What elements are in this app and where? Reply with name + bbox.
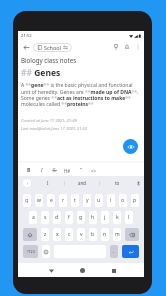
staticText: u [97,197,101,204]
button[interactable]: x [53,228,61,241]
button[interactable]: Home [76,264,89,277]
button[interactable]: h [89,211,97,224]
button[interactable]: S [48,165,61,176]
staticText: n [103,231,107,238]
button[interactable]: d [53,211,61,224]
button[interactable]: More suggestions [23,179,31,187]
button[interactable]: Pin [110,40,121,54]
staticText: a [32,214,35,221]
staticText: School [44,44,61,51]
staticText: and [78,180,86,186]
button[interactable]: g [77,211,85,224]
staticText: m [115,231,120,238]
button[interactable]: Back [20,41,32,53]
button[interactable]: ” [74,165,87,176]
button[interactable]: l [125,211,133,224]
staticText: p [133,197,137,204]
staticText: I [47,180,49,186]
button[interactable]: . [110,245,118,258]
button[interactable]: v [77,228,85,241]
staticText: Biology class notes [21,56,77,64]
button[interactable]: q [23,194,31,207]
staticText: B [27,167,31,174]
button[interactable]: Back [45,264,58,277]
staticText: S [53,167,56,174]
staticText: . [113,248,115,255]
button[interactable]: u [95,194,103,207]
button[interactable]: I [31,176,64,190]
button[interactable]: Enter [122,245,139,258]
button[interactable]: k [113,211,121,224]
button[interactable]: Voice input [134,179,143,188]
staticText: o [121,197,125,204]
button[interactable]: Emoji [42,245,50,258]
button[interactable]: School [33,43,72,52]
staticText: ?123 [27,249,35,254]
staticText: i [110,197,112,204]
staticText: ” [80,167,82,174]
staticText: w [37,197,41,204]
button[interactable]: m [113,228,121,241]
staticText: to [115,180,120,186]
button[interactable]: p [131,194,139,207]
staticText: j [104,214,106,221]
staticText: <> [91,168,97,174]
button[interactable]: y [83,194,91,207]
staticText: b [91,231,95,238]
button[interactable]: o [119,194,127,207]
button[interactable]: I [35,165,48,176]
button[interactable]: i [107,194,115,207]
button[interactable]: w [35,194,43,207]
staticText: h [91,214,95,221]
staticText: ## Genes [21,67,61,79]
staticText: e [50,197,53,204]
staticText: q [25,197,29,204]
staticText: Last modified at June 17 2021, 21:52 [21,126,88,132]
button[interactable]: Reminder [121,40,132,54]
button[interactable]: b [89,228,97,241]
button[interactable]: to [100,176,134,190]
staticText: g [79,214,83,221]
button[interactable]: t [71,194,79,207]
staticText: c [68,231,71,238]
staticText: v [80,231,83,238]
staticText: A **gene** is the basic physical and fun… [21,82,141,107]
staticText: 21:52 [21,33,32,39]
button[interactable]: j [101,211,109,224]
staticText: k [116,214,119,221]
staticText: Created at June 17 2021, 21:49 [21,118,77,124]
button[interactable]: e [47,194,55,207]
button[interactable]: n [101,228,109,241]
button[interactable]: s [41,211,49,224]
staticText: z [44,231,47,238]
staticText: f [68,214,70,221]
staticText: d [55,214,59,221]
button[interactable]: a [29,211,37,224]
button[interactable]: Shift [23,228,37,241]
button[interactable]: More options [132,40,143,54]
staticText: r [62,197,65,204]
button[interactable]: f [65,211,73,224]
staticText: I [41,167,43,174]
button[interactable]: Backspace [125,228,139,241]
button[interactable]: ?123 [23,245,38,258]
staticText: y [86,197,89,204]
button[interactable]: Preview [123,139,138,154]
button[interactable]: r [59,194,67,207]
staticText: x [56,231,59,238]
staticText: s [44,214,47,221]
button[interactable]: and [65,176,99,190]
staticText: t [74,197,76,204]
button[interactable]: H# [61,165,74,176]
staticText: l [128,214,130,221]
button[interactable]: c [65,228,73,241]
button[interactable]: B [22,165,35,176]
staticText: H# [64,168,71,174]
button[interactable]: z [41,228,49,241]
button[interactable]: Recents [107,264,120,277]
button[interactable]: <> [87,165,100,176]
